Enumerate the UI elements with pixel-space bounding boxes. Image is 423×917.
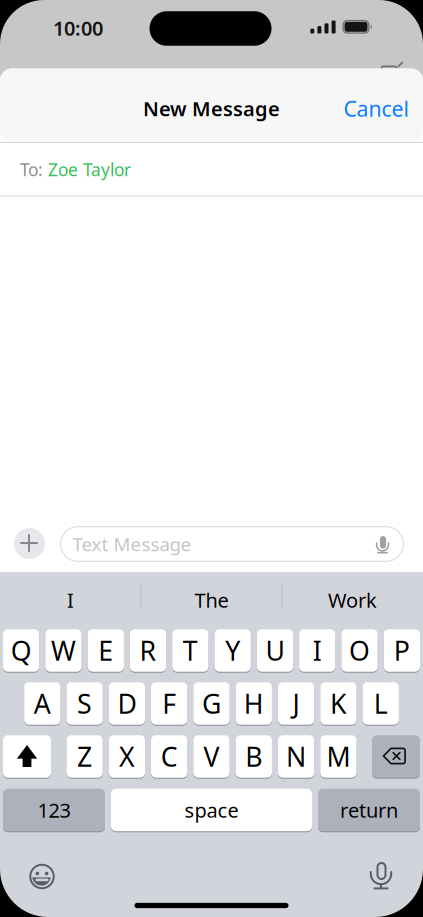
staticText: Work xyxy=(328,587,377,613)
staticText: T xyxy=(183,633,198,668)
staticText: Y xyxy=(225,633,240,668)
staticText: E xyxy=(98,633,113,668)
staticText: P xyxy=(394,633,410,668)
button[interactable]: The xyxy=(142,577,280,623)
button[interactable]: C xyxy=(151,734,187,779)
button[interactable]: E xyxy=(88,628,124,673)
button[interactable]: space xyxy=(111,788,312,832)
button[interactable]: T xyxy=(172,628,208,673)
button[interactable]: U xyxy=(257,628,293,673)
staticText: G xyxy=(202,686,221,721)
staticText: Zoe Taylor xyxy=(48,158,131,181)
staticText: M xyxy=(326,739,350,774)
button[interactable]: S xyxy=(66,681,103,726)
button[interactable]: M xyxy=(320,734,356,779)
button[interactable] xyxy=(3,734,51,779)
staticText: New Message xyxy=(143,95,280,122)
staticText: S xyxy=(77,686,92,721)
staticText: 123 xyxy=(37,797,70,823)
button[interactable]: G xyxy=(193,681,230,726)
staticText: U xyxy=(265,633,284,668)
staticText: 10:00 xyxy=(53,15,103,41)
staticText: F xyxy=(162,686,176,721)
button[interactable]: I xyxy=(1,577,139,623)
button[interactable]: O xyxy=(341,628,378,673)
button[interactable]: Q xyxy=(3,628,39,673)
staticText: B xyxy=(245,739,262,774)
staticText: H xyxy=(244,686,264,721)
staticText: A xyxy=(34,686,51,721)
button[interactable]: A xyxy=(24,681,60,726)
button[interactable] xyxy=(372,734,420,779)
staticText: Z xyxy=(77,739,92,774)
staticText: W xyxy=(51,633,76,668)
button[interactable]: F xyxy=(151,681,187,726)
button[interactable]: Cancel xyxy=(343,94,409,123)
button[interactable] xyxy=(359,852,403,896)
button[interactable]: To: xyxy=(20,143,423,196)
button[interactable]: 123 xyxy=(3,788,105,832)
button[interactable]: R xyxy=(130,628,166,673)
button[interactable]: L xyxy=(363,681,399,726)
staticText: L xyxy=(374,686,388,721)
staticText: N xyxy=(286,739,306,774)
button[interactable]: N xyxy=(278,734,314,779)
button[interactable]: Text Message xyxy=(60,526,404,562)
staticText: Q xyxy=(11,633,32,668)
staticText: C xyxy=(161,739,178,774)
button[interactable] xyxy=(14,528,45,559)
staticText: D xyxy=(117,686,136,721)
button[interactable]: Z xyxy=(66,734,103,779)
staticText: return xyxy=(340,797,398,823)
staticText: K xyxy=(330,686,347,721)
staticText: I xyxy=(67,587,74,613)
button[interactable]: H xyxy=(236,681,272,726)
button[interactable]: P xyxy=(384,628,420,673)
staticText: space xyxy=(184,797,238,823)
staticText: X xyxy=(119,739,135,774)
staticText: O xyxy=(349,633,370,668)
button[interactable]: X xyxy=(109,734,145,779)
button[interactable]: V xyxy=(193,734,230,779)
staticText: Cancel xyxy=(343,94,409,123)
button[interactable]: return xyxy=(318,788,420,832)
staticText: V xyxy=(203,739,219,774)
staticText: R xyxy=(139,633,156,668)
staticText: To: xyxy=(20,158,43,181)
staticText: Text Message xyxy=(72,532,191,556)
staticText: I xyxy=(313,633,322,668)
button[interactable]: D xyxy=(109,681,145,726)
button[interactable]: W xyxy=(45,628,82,673)
staticText: The xyxy=(194,587,228,613)
staticText: J xyxy=(293,686,300,721)
button[interactable] xyxy=(20,854,64,898)
button[interactable]: J xyxy=(278,681,314,726)
button[interactable]: K xyxy=(320,681,356,726)
button[interactable]: Work xyxy=(283,577,421,623)
button[interactable]: B xyxy=(236,734,272,779)
button[interactable]: I xyxy=(299,628,335,673)
button[interactable]: Y xyxy=(214,628,251,673)
